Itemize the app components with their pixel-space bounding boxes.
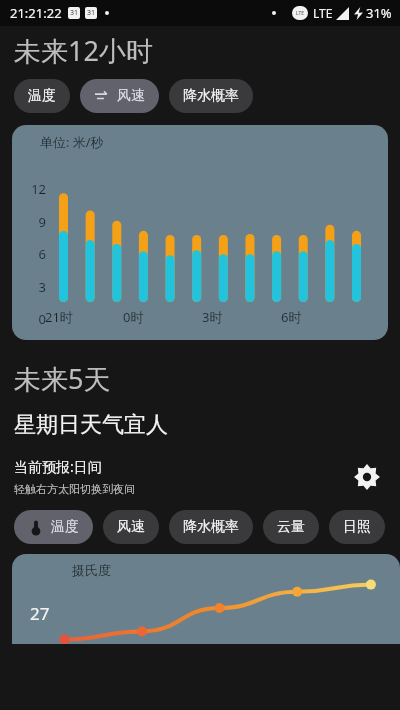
staticText: 27 [30, 602, 50, 625]
staticText: 3 [24, 278, 46, 296]
button[interactable]: 降水概率 [169, 510, 253, 544]
staticText: 当前预报:日间 [14, 457, 102, 476]
staticText: LTE [313, 5, 333, 21]
staticText: 21:21:22 [10, 4, 62, 22]
staticText: 摄氏度 [72, 562, 111, 578]
button[interactable]: 降水概率 [169, 79, 253, 113]
staticText: 轻触右方太阳切换到夜间 [14, 482, 135, 496]
staticText: 单位: 米/秒 [40, 133, 104, 151]
staticText: 日照 [343, 518, 371, 536]
staticText: 降水概率 [183, 87, 239, 105]
staticText: 降水概率 [183, 518, 239, 536]
staticText: 云量 [277, 518, 305, 536]
staticText: 31 [87, 8, 96, 18]
staticText: 31 [70, 8, 79, 18]
staticText: 温度 [51, 518, 79, 536]
staticText: 0 [24, 310, 46, 328]
staticText: 6 [24, 245, 46, 263]
staticText: 3时 [202, 308, 223, 326]
button[interactable]: 日照 [329, 510, 385, 544]
staticText: LTE [296, 10, 305, 17]
button[interactable]: 风速 [103, 510, 159, 544]
button[interactable]: 云量 [263, 510, 319, 544]
staticText: 温度 [28, 87, 56, 105]
staticText: 风速 [117, 518, 145, 536]
staticText: 风速 [117, 87, 145, 105]
staticText: 未来5天 [14, 360, 111, 397]
staticText: 0时 [123, 308, 144, 326]
staticText: 9 [24, 213, 46, 231]
button[interactable]: 风速 [80, 79, 159, 113]
staticText: 6时 [281, 308, 302, 326]
staticText: 12 [24, 180, 46, 198]
staticText: 未来12小时 [14, 32, 153, 69]
button[interactable]: 切换日夜 [350, 460, 384, 494]
staticText: 星期日天气宜人 [14, 411, 168, 439]
staticText: 21时 [45, 308, 73, 326]
staticText: 31% [366, 4, 392, 22]
button[interactable]: 温度 [14, 79, 70, 113]
button[interactable]: 温度 [14, 510, 93, 544]
